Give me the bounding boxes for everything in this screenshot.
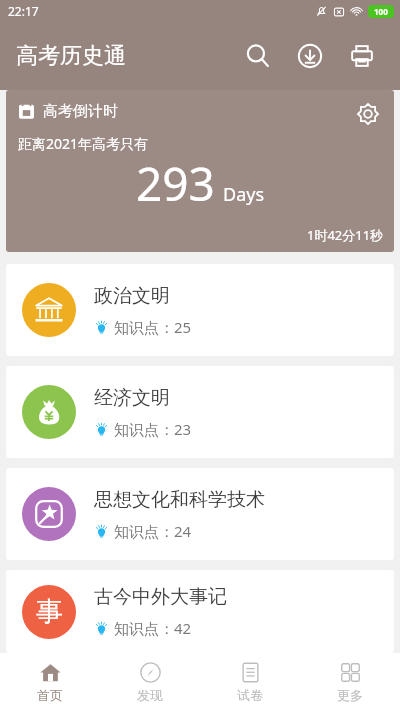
staticText: 古今中外大事记 — [94, 585, 227, 609]
staticText: 距离2021年高考只有 — [18, 134, 149, 153]
staticText: 试卷 — [237, 687, 263, 703]
staticText: 思想文化和科学技术 — [94, 488, 265, 512]
button[interactable]: 发现 — [100, 653, 200, 711]
button[interactable]: 首页 — [0, 653, 100, 711]
button[interactable]: 试卷 — [200, 653, 300, 711]
button[interactable]: 政治文明 — [6, 264, 394, 356]
staticText: 经济文明 — [94, 386, 170, 410]
button[interactable]: 思想文化和科学技术 — [6, 468, 394, 560]
staticText: 事 — [36, 595, 63, 629]
staticText: 知识点：25 — [114, 317, 192, 337]
staticText: 293 — [136, 152, 215, 215]
staticText: Days — [223, 182, 265, 207]
staticText: 政治文明 — [94, 284, 170, 308]
staticText: 知识点：24 — [114, 521, 192, 541]
button[interactable]: Settings — [348, 94, 388, 134]
staticText: 100 — [374, 6, 388, 17]
staticText: 首页 — [37, 687, 63, 703]
button[interactable]: Download — [284, 30, 336, 82]
button[interactable]: 更多 — [300, 653, 400, 711]
staticText: 知识点：42 — [114, 618, 192, 638]
staticText: 知识点：23 — [114, 419, 192, 439]
button[interactable]: Search — [232, 30, 284, 82]
staticText: 高考历史通 — [16, 42, 126, 70]
button[interactable]: 事 — [6, 570, 394, 653]
staticText: 更多 — [337, 687, 363, 703]
staticText: 22:17 — [8, 3, 39, 19]
staticText: 发现 — [137, 687, 163, 703]
staticText: 高考倒计时 — [43, 102, 118, 121]
button[interactable]: Print — [336, 30, 388, 82]
button[interactable]: 高考倒计时 — [6, 90, 394, 252]
button[interactable]: 经济文明 — [6, 366, 394, 458]
staticText: 1时42分11秒 — [307, 226, 384, 244]
